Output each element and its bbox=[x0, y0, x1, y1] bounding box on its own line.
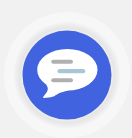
button[interactable]: Messages bbox=[0, 0, 132, 138]
